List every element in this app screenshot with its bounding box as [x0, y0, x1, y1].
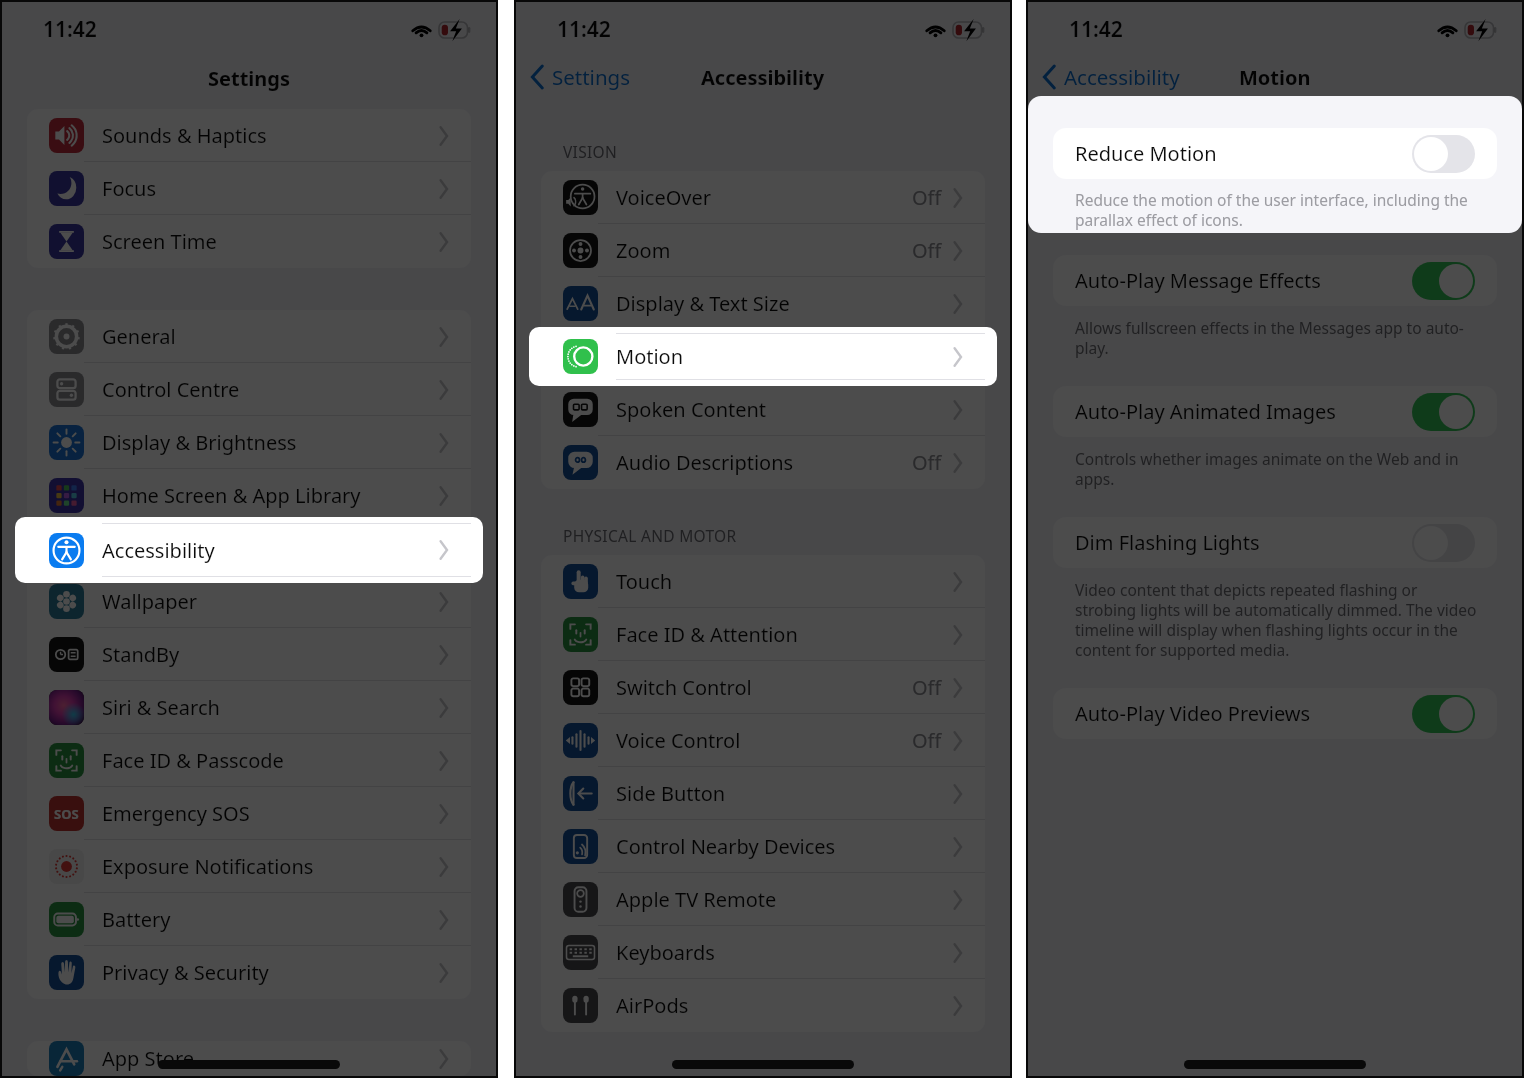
button[interactable]: Switch Control — [541, 661, 985, 714]
other: Battery charging — [953, 22, 985, 38]
other: Wi-Fi connected — [926, 23, 945, 38]
button[interactable]: Face ID & Attention — [541, 608, 985, 661]
staticText: Off — [912, 727, 942, 754]
staticText: Screen Time — [102, 228, 217, 255]
staticText: Off — [912, 184, 942, 211]
button[interactable]: Zoom — [541, 224, 985, 277]
button[interactable]: Auto-Play Video Previews — [1053, 688, 1497, 739]
button[interactable]: Reduce Motion — [1053, 125, 1497, 176]
staticText: Motion — [616, 343, 684, 370]
button[interactable]: AirPods — [541, 979, 985, 1032]
staticText: Zoom — [616, 237, 671, 264]
staticText: Side Button — [616, 780, 726, 807]
staticText: SOS — [54, 805, 79, 823]
button[interactable]: Keyboards — [541, 926, 985, 979]
staticText: Reduce Motion — [1075, 140, 1217, 167]
staticText: Emergency SOS — [102, 800, 250, 827]
staticText: Voice Control — [616, 727, 741, 754]
staticText: Privacy & Security — [102, 959, 269, 986]
button[interactable]: Motion — [529, 327, 997, 386]
button[interactable]: Battery — [27, 893, 471, 946]
staticText: Video content that depicts repeated flas… — [1075, 579, 1478, 660]
staticText: Keyboards — [616, 939, 715, 966]
staticText: Siri & Search — [102, 694, 220, 721]
button[interactable]: Auto-Play Message Effects — [1053, 255, 1497, 306]
staticText: Accessibility — [102, 535, 215, 562]
staticText: Dim Flashing Lights — [1075, 529, 1260, 556]
staticText: VoiceOver — [616, 184, 712, 211]
staticText: Auto-Play Video Previews — [1075, 700, 1311, 727]
button[interactable]: Dim Flashing Lights — [1053, 517, 1497, 568]
button[interactable]: Screen Time — [27, 215, 471, 268]
staticText: Display & Text Size — [616, 290, 790, 317]
staticText: Home Screen & App Library — [102, 482, 361, 509]
staticText: Controls whether images animate on the W… — [1075, 448, 1478, 489]
other: Battery charging — [439, 22, 471, 38]
button[interactable]: Siri & Search — [27, 681, 471, 734]
button[interactable]: Voice Control — [541, 714, 985, 767]
staticText: Settings — [208, 65, 290, 92]
staticText: Display & Brightness — [102, 429, 297, 456]
staticText: Touch — [616, 568, 673, 595]
button[interactable]: Spoken Content — [541, 383, 985, 436]
button[interactable]: Privacy & Security — [27, 946, 471, 999]
button[interactable]: Touch — [541, 555, 985, 608]
button[interactable]: Control Nearby Devices — [541, 820, 985, 873]
button[interactable]: Exposure Notifications — [27, 840, 471, 893]
staticText: Battery — [102, 906, 171, 933]
button[interactable]: General — [27, 310, 471, 363]
staticText: Face ID & Attention — [616, 621, 798, 648]
button[interactable]: StandBy — [27, 628, 471, 681]
button[interactable]: App Store — [27, 1041, 471, 1076]
button[interactable]: Auto-Play Animated Images — [1053, 386, 1497, 437]
button[interactable]: Sounds & Haptics — [27, 109, 471, 162]
staticText: Reduce the motion of the user interface,… — [1075, 189, 1478, 230]
button[interactable]: SOS — [27, 787, 471, 840]
other: Wi-Fi connected — [412, 23, 431, 38]
staticText: Control Nearby Devices — [616, 833, 836, 860]
staticText: Switch Control — [616, 674, 752, 701]
button[interactable]: Focus — [27, 162, 471, 215]
staticText: 11:42 — [1069, 15, 1123, 44]
staticText: Face ID & Passcode — [102, 747, 284, 774]
staticText: Sounds & Haptics — [102, 122, 267, 149]
button[interactable]: Reduce Motion — [1053, 128, 1497, 179]
staticText: 11:42 — [557, 15, 611, 44]
staticText: 11:42 — [43, 15, 97, 44]
staticText: General — [102, 323, 176, 350]
staticText: Off — [912, 237, 942, 264]
button[interactable]: VoiceOver — [541, 171, 985, 224]
button[interactable]: Wallpaper — [27, 575, 471, 628]
button[interactable]: Audio Descriptions — [541, 436, 985, 489]
staticText: Off — [912, 674, 942, 701]
button[interactable]: Back to Settings — [527, 57, 634, 97]
staticText: Apple TV Remote — [616, 886, 777, 913]
button[interactable]: Motion — [541, 330, 985, 383]
button[interactable]: Accessibility — [15, 517, 483, 583]
button[interactable]: Back to Accessibility — [1039, 57, 1183, 97]
staticText: Spoken Content — [616, 396, 767, 423]
button[interactable]: Display & Text Size — [541, 277, 985, 330]
staticText: Settings — [552, 63, 631, 91]
button[interactable]: Accessibility — [27, 522, 471, 575]
staticText: Focus — [102, 175, 157, 202]
button[interactable]: Face ID & Passcode — [27, 734, 471, 787]
button[interactable]: Display & Brightness — [27, 416, 471, 469]
staticText: Accessibility — [102, 537, 215, 564]
button[interactable]: Control Centre — [27, 363, 471, 416]
other: Wi-Fi connected — [1438, 23, 1457, 38]
staticText: Wallpaper — [102, 588, 198, 615]
staticText: AirPods — [616, 992, 689, 1019]
staticText: Auto-Play Animated Images — [1075, 398, 1336, 425]
staticText: Exposure Notifications — [102, 853, 314, 880]
staticText: Off — [912, 449, 942, 476]
staticText: Reduce the motion of the user interface,… — [1075, 187, 1478, 228]
staticText: Control Centre — [102, 376, 240, 403]
staticText: StandBy — [102, 641, 180, 668]
button[interactable]: Home Screen & App Library — [27, 469, 471, 522]
staticText: Accessibility — [701, 64, 825, 91]
button[interactable]: Apple TV Remote — [541, 873, 985, 926]
staticText: PHYSICAL AND MOTOR — [563, 525, 737, 546]
staticText: Motion — [616, 343, 684, 370]
button[interactable]: Side Button — [541, 767, 985, 820]
